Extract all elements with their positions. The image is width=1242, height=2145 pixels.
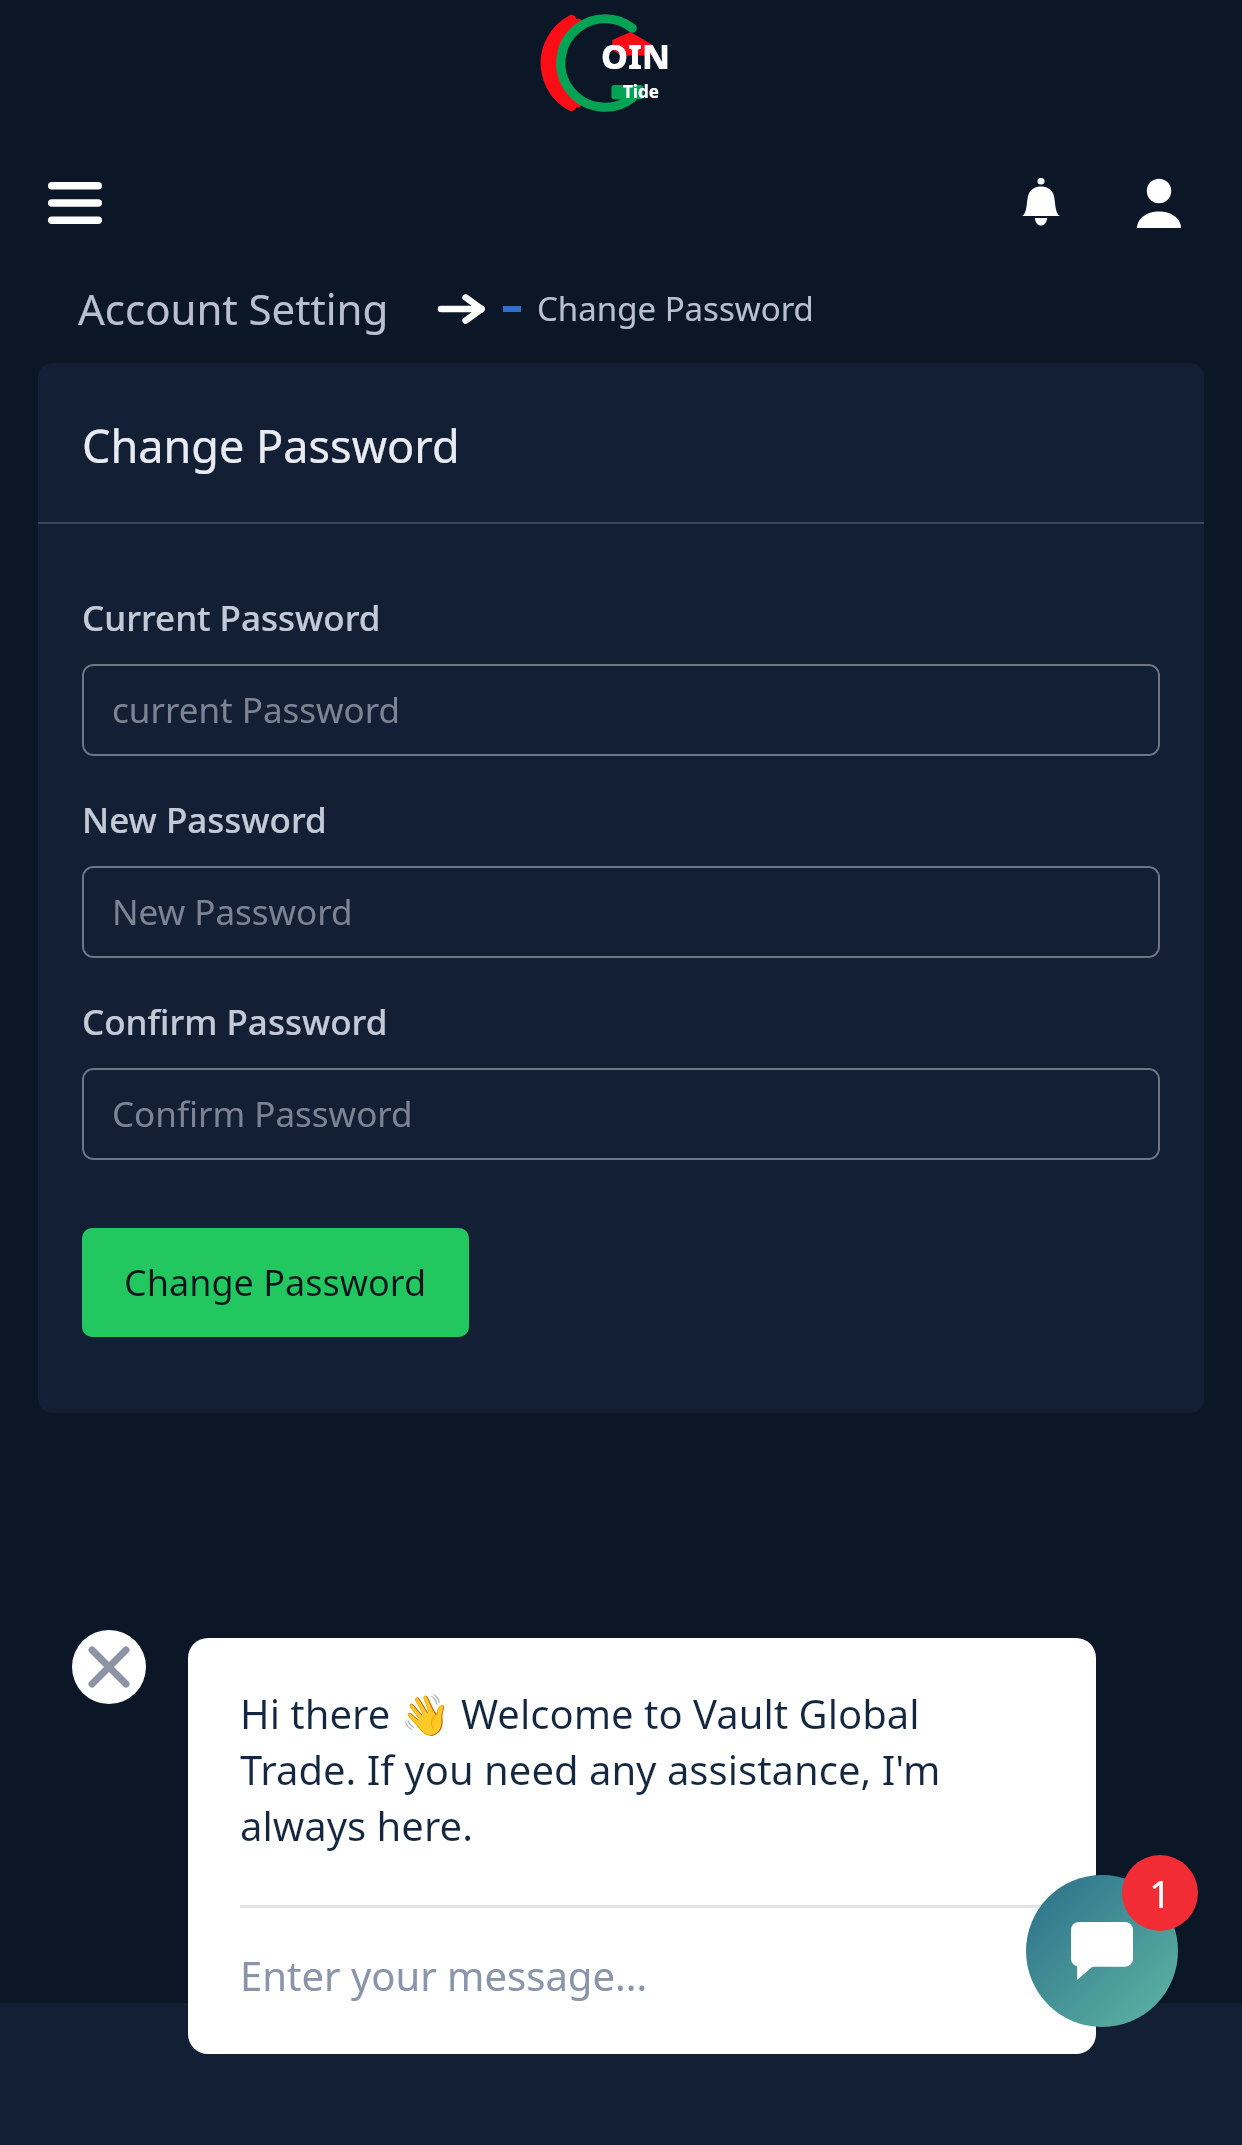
staticText: Enter your message... — [240, 1948, 648, 2002]
staticText: New Password — [82, 796, 327, 844]
staticText: Account Setting — [78, 280, 389, 337]
staticText: Hi there 👋 Welcome to Vault Global Trade… — [240, 1686, 1044, 1853]
staticText: Change Password — [124, 1258, 427, 1307]
staticText: New Password — [112, 888, 353, 936]
staticText: Change Password — [82, 415, 460, 476]
button[interactable]: New Password — [82, 866, 1160, 958]
staticText: Confirm Password — [82, 998, 388, 1046]
button[interactable]: Close chat — [72, 1630, 146, 1704]
button[interactable]: Open chat — [1026, 1875, 1178, 2027]
button[interactable]: Profile — [1120, 164, 1198, 242]
staticText: Tide — [623, 80, 659, 103]
staticText: Confirm Password — [112, 1090, 413, 1138]
staticText: Current Password — [82, 594, 381, 642]
button[interactable]: Enter your message... — [188, 1948, 1096, 2002]
staticText: current Password — [112, 686, 401, 734]
button[interactable]: Notifications — [1002, 164, 1080, 242]
button[interactable]: Menu — [38, 168, 112, 238]
button[interactable]: Account Setting — [78, 280, 389, 337]
staticText: Change Password — [537, 286, 814, 331]
staticText: OIN — [601, 33, 671, 79]
button[interactable]: current Password — [82, 664, 1160, 756]
button[interactable]: Change Password — [82, 1228, 469, 1337]
button[interactable]: Confirm Password — [82, 1068, 1160, 1160]
staticText: 1 — [1149, 1867, 1171, 1919]
